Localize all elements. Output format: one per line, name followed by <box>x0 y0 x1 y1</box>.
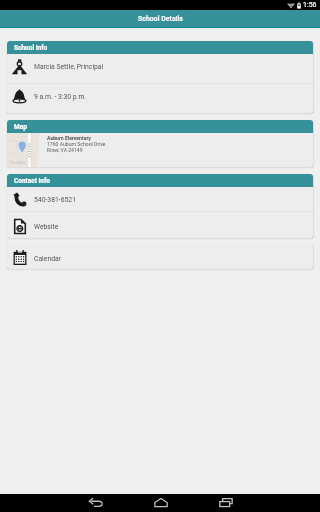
staticText: Map <box>14 123 27 131</box>
staticText: 1760 Auburn School Drive <box>47 141 106 147</box>
staticText: Google <box>9 159 26 165</box>
button[interactable]: Google <box>7 133 313 167</box>
staticText: Calendar <box>34 255 61 263</box>
staticText: School Details <box>138 15 183 23</box>
button[interactable]: 540-381-6521 <box>7 187 313 211</box>
button[interactable]: Recent apps <box>193 494 258 512</box>
staticText: 1:56 <box>303 1 317 9</box>
button[interactable]: Website <box>7 212 313 238</box>
button[interactable]: Marcia Settle, Principal <box>7 54 313 83</box>
button[interactable]: Home <box>128 494 193 512</box>
staticText: Website <box>34 223 59 231</box>
staticText: Contact Info <box>14 177 51 185</box>
staticText: 9 a.m. - 3:30 p.m. <box>34 93 87 101</box>
staticText: Auburn Elementary <box>47 135 91 141</box>
staticText: Marcia Settle, Principal <box>34 63 104 71</box>
staticText: Riner, VA 24149 <box>47 147 83 153</box>
staticText: 540-381-6521 <box>34 196 76 204</box>
button[interactable]: Back <box>63 494 128 512</box>
button[interactable]: 9 a.m. - 3:30 p.m. <box>7 84 313 113</box>
staticText: School Info <box>14 44 48 52</box>
button[interactable]: Calendar <box>7 244 313 269</box>
